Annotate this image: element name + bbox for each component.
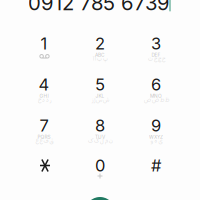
staticText: TUV [95, 134, 105, 140]
staticText: 0 [95, 155, 105, 175]
button[interactable]: 3 [128, 23, 184, 64]
staticText: ش س ژ ز [91, 95, 108, 104]
staticText: DEF [151, 52, 160, 58]
staticText: PQRS [37, 134, 50, 140]
staticText: ظ ط ض ص [143, 95, 168, 104]
button[interactable]: 6 [128, 64, 184, 105]
button[interactable]: 8 [72, 105, 128, 146]
staticText: 5 [95, 74, 105, 94]
staticText: 4 [38, 74, 49, 94]
staticText: ن م ل گ ک [87, 136, 112, 145]
button[interactable]: 1 [16, 23, 72, 64]
staticText: پ ب ا آ [92, 54, 107, 63]
button[interactable]: # [128, 145, 184, 186]
staticText: # [151, 155, 161, 175]
staticText: ح چ ج ت [147, 54, 164, 63]
staticText: 6 [151, 74, 161, 94]
staticText: 2 [95, 33, 105, 53]
button[interactable]: 0 [72, 145, 128, 186]
button[interactable]: 4 [16, 64, 72, 105]
staticText: MNO [150, 93, 162, 99]
button[interactable]: 9 [128, 105, 184, 146]
button[interactable]: 5 [72, 64, 128, 105]
staticText: ی ه و [150, 136, 162, 145]
staticText: GHI [39, 93, 48, 99]
button[interactable] [16, 145, 72, 186]
staticText: 7 [39, 115, 48, 135]
staticText: ق ف غ ع [35, 136, 53, 145]
button[interactable]: 7 [16, 105, 72, 146]
staticText: 3 [151, 33, 161, 53]
staticText: 0912 785 6739 [28, 0, 170, 15]
staticText: ABC [95, 52, 105, 58]
button[interactable]: 2 [72, 23, 128, 64]
staticText: JKL [95, 93, 104, 99]
staticText: ر ذ د خ [37, 95, 50, 104]
staticText: WXYZ [149, 134, 163, 140]
staticText: 9 [151, 115, 161, 135]
staticText: 1 [40, 33, 47, 53]
staticText: 8 [95, 115, 105, 135]
